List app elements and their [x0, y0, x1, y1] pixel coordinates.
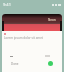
- staticText: 9:41: [3, 2, 11, 7]
- staticText: Done: [11, 62, 19, 66]
- staticText: Neon: [48, 18, 56, 22]
- staticText: Lorem ipsum dolor sit amet: [4, 36, 43, 40]
- button[interactable]: Confirm: [48, 61, 53, 66]
